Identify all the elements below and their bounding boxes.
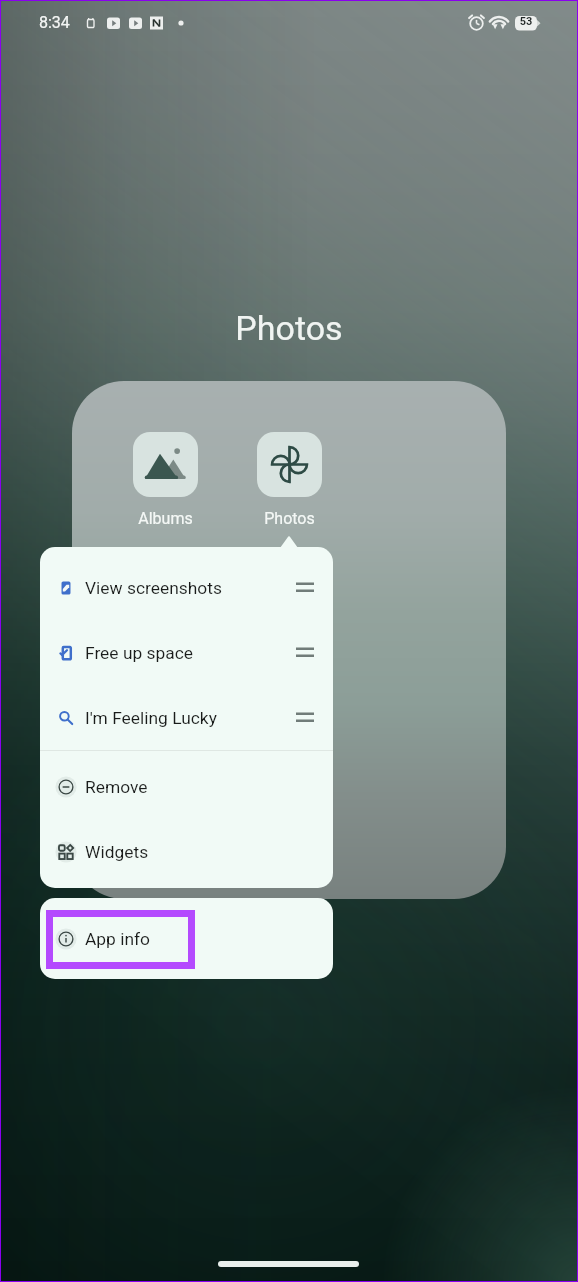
button[interactable]: Albums [72,381,506,899]
staticText: I'm Feeling Lucky [85,708,217,728]
button[interactable]: Remove [40,754,333,819]
staticText: Widgets [85,842,149,862]
staticText: App info [85,929,150,949]
button[interactable]: Albums [133,432,198,528]
button[interactable]: App info [40,898,333,979]
staticText: Free up space [85,643,194,663]
other: Reorder [296,713,314,723]
other: Reorder [296,583,314,593]
staticText: Photos [0,308,578,348]
staticText: Photos [257,509,322,528]
staticText: Albums [133,509,198,528]
button[interactable]: Widgets [40,819,333,884]
other: Reorder [296,648,314,658]
button[interactable]: I'm Feeling Lucky [40,685,333,750]
button[interactable]: View screenshots [40,555,333,620]
button[interactable]: Free up space [40,620,333,685]
staticText: View screenshots [85,578,222,598]
staticText: Remove [85,777,148,797]
staticText: 8:34 [39,13,70,32]
staticText: 53 [518,15,534,28]
button[interactable]: Photos [257,432,322,528]
